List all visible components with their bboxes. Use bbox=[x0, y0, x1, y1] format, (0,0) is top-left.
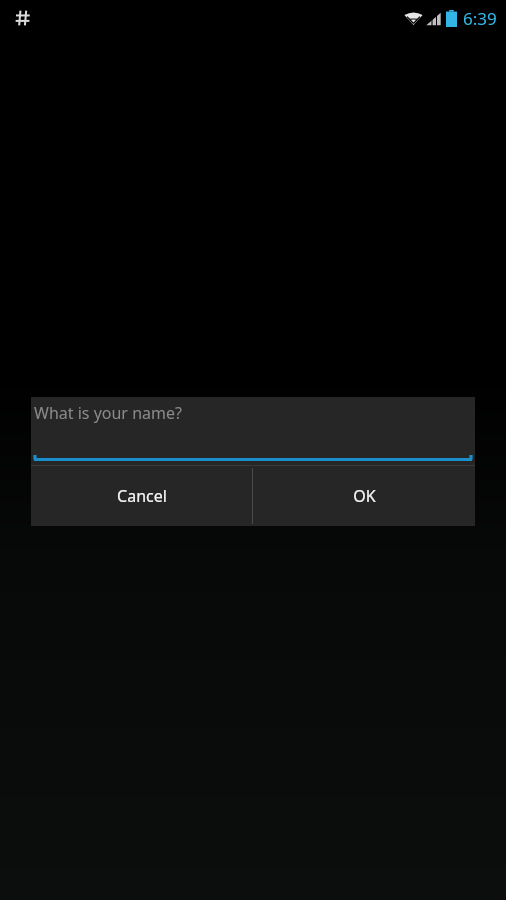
staticText: OK bbox=[353, 485, 376, 507]
button[interactable]: What is your name? bbox=[31, 397, 475, 465]
staticText: 6:39 bbox=[463, 7, 497, 30]
button[interactable]: OK bbox=[253, 466, 475, 526]
staticText: Cancel bbox=[117, 485, 167, 507]
button[interactable]: Cancel bbox=[31, 466, 252, 526]
other: Notification bbox=[12, 7, 34, 29]
staticText: What is your name? bbox=[34, 402, 182, 424]
